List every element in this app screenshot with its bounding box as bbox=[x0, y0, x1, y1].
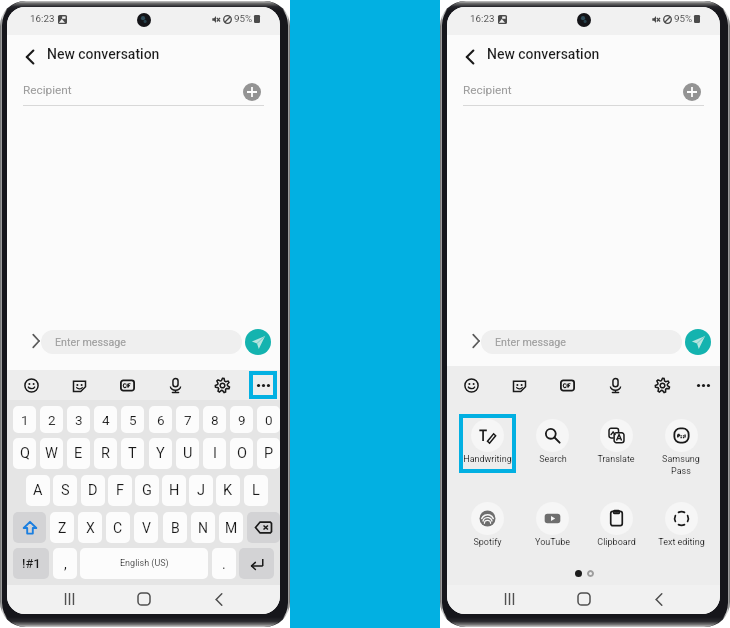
button[interactable]: Translate bbox=[586, 414, 646, 486]
button[interactable]: Recents bbox=[495, 585, 523, 613]
button[interactable]: English (US) bbox=[80, 548, 208, 579]
button[interactable]: C bbox=[106, 512, 130, 543]
staticText: P bbox=[264, 445, 274, 462]
button[interactable]: Samsung Pass bbox=[651, 414, 711, 486]
button[interactable]: 8 bbox=[203, 406, 226, 433]
button[interactable]: GIF bbox=[554, 372, 580, 398]
staticText: I bbox=[213, 445, 217, 462]
staticText: T bbox=[128, 445, 137, 462]
button[interactable]: Z bbox=[50, 512, 74, 543]
button[interactable]: Back bbox=[454, 40, 486, 73]
button[interactable]: Send bbox=[685, 329, 711, 355]
staticText: R bbox=[101, 445, 110, 462]
button[interactable]: Text editing bbox=[651, 497, 711, 569]
button[interactable]: Expand toolbar bbox=[467, 330, 485, 352]
button[interactable]: Add recipient bbox=[243, 83, 261, 101]
button[interactable]: Enter message bbox=[481, 330, 682, 354]
button[interactable]: Settings bbox=[649, 372, 675, 398]
button[interactable]: 3 bbox=[67, 406, 90, 433]
staticText: New conversation bbox=[487, 46, 600, 62]
button[interactable]: N bbox=[191, 512, 215, 543]
button[interactable]: X bbox=[78, 512, 102, 543]
staticText: V bbox=[142, 520, 151, 536]
button[interactable]: F bbox=[108, 475, 132, 506]
button[interactable]: D bbox=[81, 475, 105, 506]
staticText: Text editing bbox=[658, 537, 705, 548]
button[interactable]: Stickers bbox=[66, 372, 92, 398]
button[interactable]: 0 bbox=[257, 406, 280, 433]
button[interactable]: U bbox=[176, 438, 199, 469]
staticText: A bbox=[33, 482, 43, 499]
button[interactable]: Add recipient bbox=[683, 83, 701, 101]
staticText: Q bbox=[20, 445, 30, 462]
button[interactable]: L bbox=[244, 475, 268, 506]
button[interactable]: A bbox=[26, 475, 50, 506]
button[interactable]: 7 bbox=[176, 406, 199, 433]
button[interactable]: Send bbox=[245, 329, 271, 355]
button[interactable]: Back bbox=[14, 40, 46, 73]
button[interactable]: Emoji bbox=[18, 372, 44, 398]
button[interactable]: O bbox=[230, 438, 253, 469]
staticText: 3 bbox=[75, 412, 83, 428]
button[interactable]: Home bbox=[130, 585, 158, 613]
button[interactable]: B bbox=[163, 512, 187, 543]
staticText: Enter message bbox=[495, 336, 566, 349]
button[interactable]: G bbox=[135, 475, 159, 506]
button[interactable]: S bbox=[53, 475, 77, 506]
staticText: L bbox=[252, 482, 260, 499]
button[interactable]: Handwriting bbox=[457, 414, 517, 486]
button[interactable]: Settings bbox=[209, 372, 235, 398]
button[interactable]: Voice input bbox=[602, 372, 628, 398]
button[interactable]: Expand toolbar bbox=[27, 330, 45, 352]
button[interactable]: 6 bbox=[149, 406, 172, 433]
button[interactable]: More keyboard options bbox=[249, 371, 277, 399]
button[interactable]: 5 bbox=[121, 406, 144, 433]
button[interactable]: E bbox=[67, 438, 90, 469]
button[interactable]: YouTube bbox=[522, 497, 582, 569]
button[interactable]: More keyboard options bbox=[689, 371, 717, 399]
button[interactable]: Voice input bbox=[162, 372, 188, 398]
staticText: 8 bbox=[211, 412, 219, 428]
button[interactable]: Backspace bbox=[247, 512, 280, 543]
button[interactable]: W bbox=[40, 438, 63, 469]
button[interactable]: Spotify bbox=[457, 497, 517, 569]
button[interactable]: Back bbox=[205, 585, 233, 613]
button[interactable]: Y bbox=[149, 438, 172, 469]
button[interactable]: . bbox=[212, 548, 236, 579]
button[interactable]: Home bbox=[570, 585, 598, 613]
button[interactable]: P bbox=[257, 438, 280, 469]
button[interactable]: Enter message bbox=[41, 330, 242, 354]
button[interactable]: 2 bbox=[40, 406, 63, 433]
button[interactable]: Stickers bbox=[506, 372, 532, 398]
button[interactable]: Emoji bbox=[458, 372, 484, 398]
button[interactable]: H bbox=[162, 475, 186, 506]
button[interactable]: T bbox=[121, 438, 144, 469]
button[interactable]: 1 bbox=[13, 406, 36, 433]
staticText: S bbox=[61, 482, 70, 499]
button[interactable]: J bbox=[189, 475, 213, 506]
button[interactable]: !#1 bbox=[13, 548, 49, 579]
staticText: 16:23 bbox=[30, 13, 55, 24]
button[interactable]: K bbox=[216, 475, 240, 506]
staticText: F bbox=[116, 482, 125, 499]
button[interactable]: , bbox=[53, 548, 77, 579]
button[interactable]: V bbox=[134, 512, 158, 543]
button[interactable]: Search bbox=[522, 414, 582, 486]
button[interactable]: Shift bbox=[13, 512, 46, 543]
button[interactable]: Enter bbox=[239, 548, 274, 579]
staticText: B bbox=[171, 520, 180, 536]
button[interactable]: Clipboard bbox=[586, 497, 646, 569]
staticText: New conversation bbox=[47, 46, 160, 62]
staticText: U bbox=[183, 445, 193, 462]
button[interactable]: Recents bbox=[55, 585, 83, 613]
button[interactable]: I bbox=[203, 438, 226, 469]
button[interactable]: Q bbox=[13, 438, 36, 469]
button[interactable]: GIF bbox=[114, 372, 140, 398]
staticText: 6 bbox=[157, 412, 165, 428]
button[interactable]: Back bbox=[645, 585, 673, 613]
button[interactable]: R bbox=[94, 438, 117, 469]
button[interactable]: 4 bbox=[94, 406, 117, 433]
button[interactable]: 9 bbox=[230, 406, 253, 433]
button[interactable]: M bbox=[219, 512, 243, 543]
staticText: Z bbox=[58, 520, 67, 536]
